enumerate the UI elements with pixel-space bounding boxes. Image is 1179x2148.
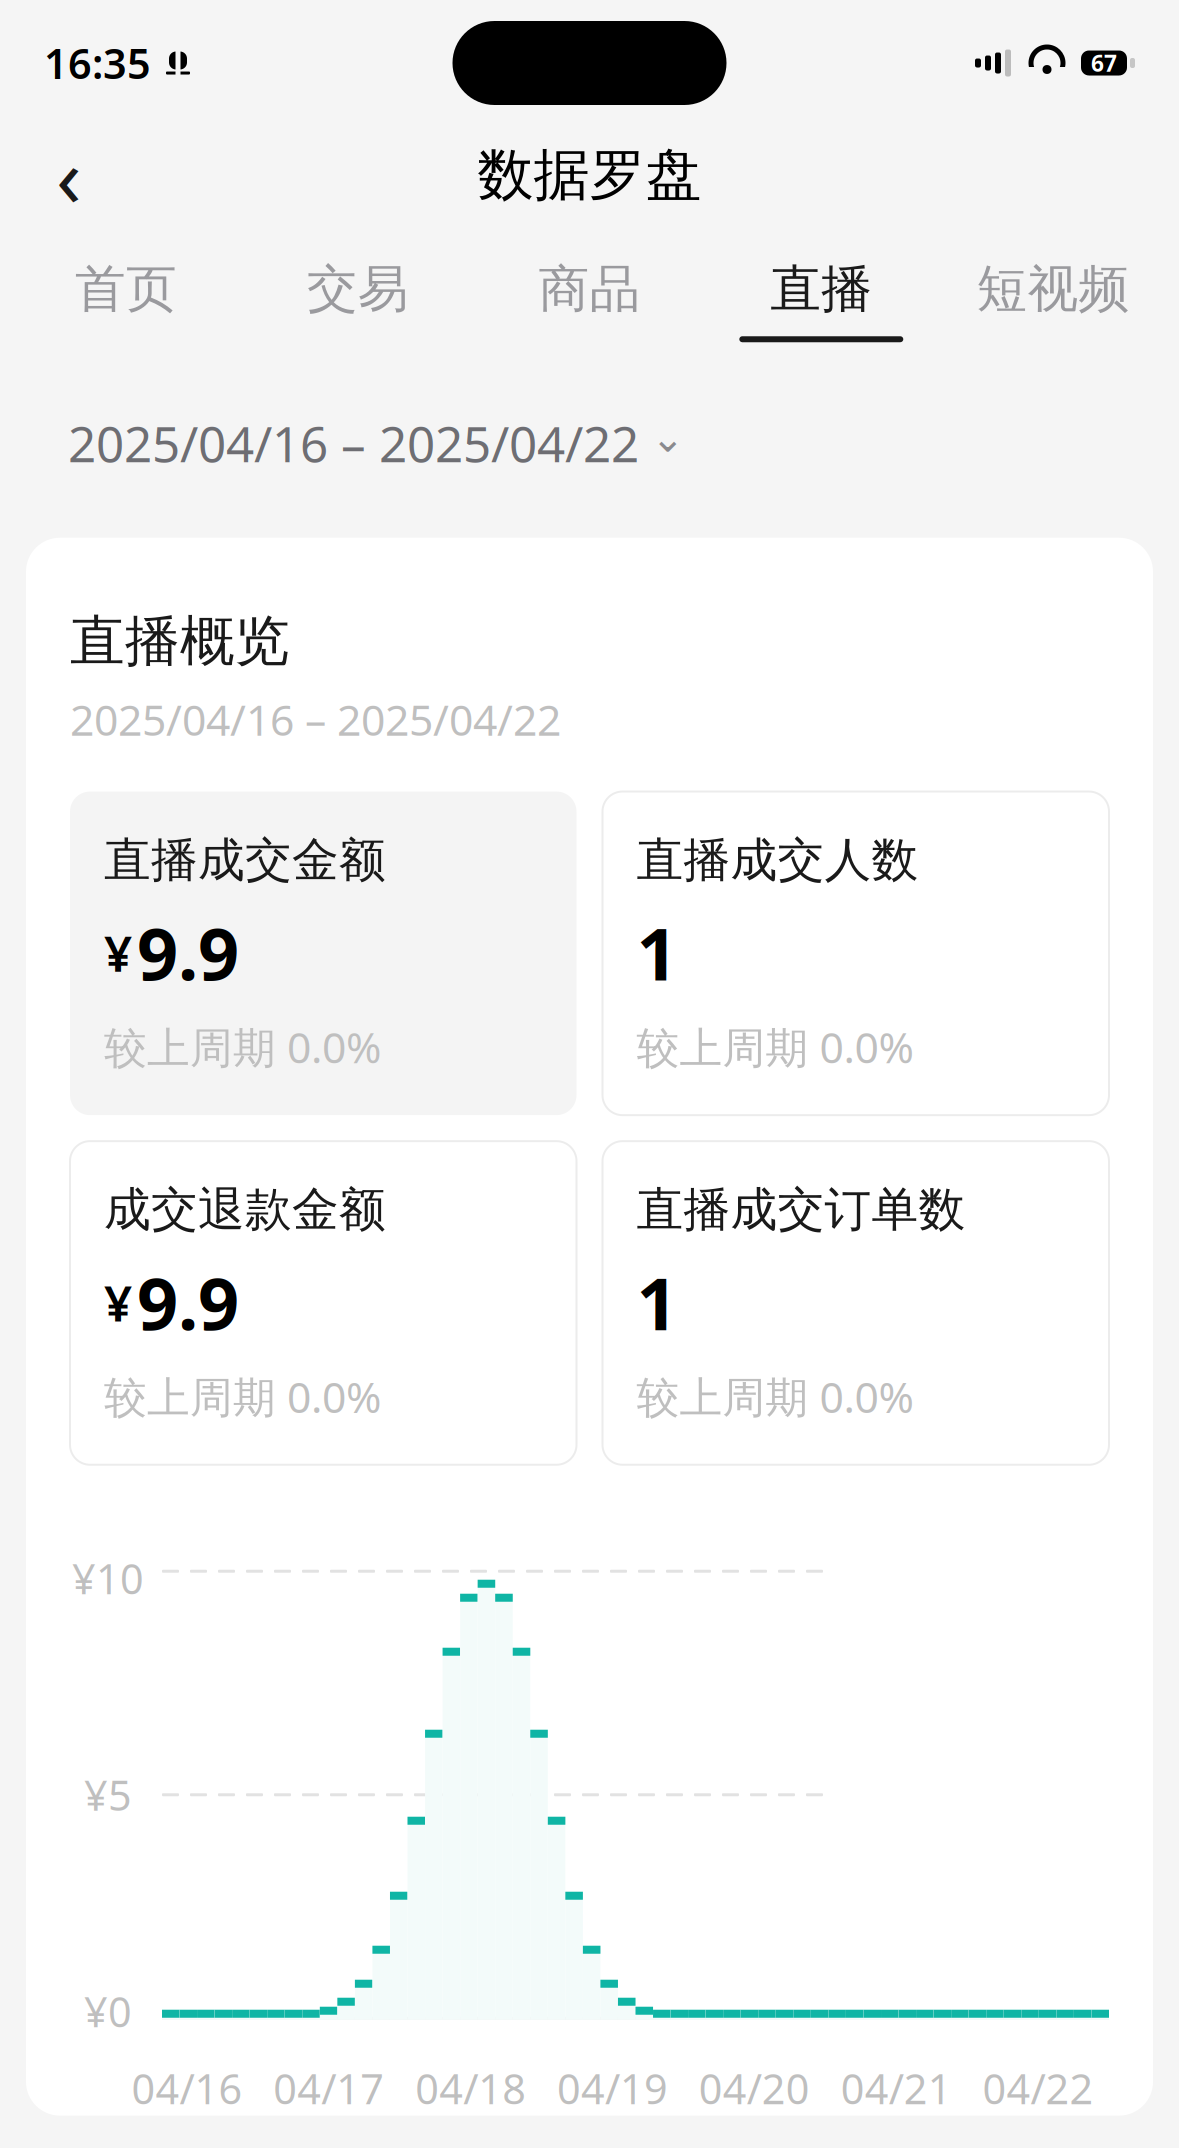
- staticText: 1: [636, 1254, 677, 1350]
- staticText: 直播概览: [70, 608, 290, 675]
- button[interactable]: 交易: [242, 250, 474, 350]
- staticText: 67: [1091, 48, 1117, 78]
- staticText: 直播: [770, 258, 872, 320]
- staticText: 04/22: [983, 2061, 1094, 2116]
- staticText: 直播成交金额: [104, 832, 386, 889]
- staticText: 成交退款金额: [104, 1181, 386, 1238]
- staticText: ¥5: [84, 1767, 132, 1822]
- staticText: 较上周期 0.0%: [104, 1018, 381, 1075]
- staticText: 数据罗盘: [477, 141, 701, 209]
- staticText: 04/20: [699, 2061, 810, 2116]
- staticText: 直播成交人数: [636, 832, 918, 889]
- button[interactable]: 成交退款金额: [70, 1141, 576, 1465]
- staticText: 商品: [538, 258, 640, 320]
- staticText: 交易: [307, 258, 409, 320]
- staticText: 较上周期 0.0%: [636, 1018, 913, 1075]
- staticText: 04/17: [273, 2061, 384, 2116]
- staticText: 9.9: [137, 1254, 239, 1350]
- staticText: ¥10: [72, 1551, 144, 1606]
- button[interactable]: 2025/04/16 – 2025/04/22: [68, 400, 685, 486]
- staticText: 较上周期 0.0%: [636, 1368, 913, 1425]
- button[interactable]: 商品: [474, 250, 705, 350]
- staticText: 首页: [75, 258, 177, 320]
- staticText: 较上周期 0.0%: [104, 1368, 381, 1425]
- staticText: 04/21: [841, 2061, 952, 2116]
- button[interactable]: 直播成交人数: [602, 792, 1109, 1115]
- staticText: 16:35: [44, 36, 151, 90]
- button[interactable]: 返回: [30, 136, 108, 214]
- staticText: ⌄: [651, 415, 685, 461]
- staticText: 2025/04/16 – 2025/04/22: [68, 410, 639, 476]
- staticText: 04/19: [557, 2061, 668, 2116]
- staticText: 04/16: [131, 2061, 242, 2116]
- staticText: 1: [636, 905, 677, 1000]
- button[interactable]: 直播成交金额: [70, 792, 576, 1115]
- staticText: ¥: [104, 1269, 132, 1335]
- staticText: ¥: [104, 920, 132, 985]
- button[interactable]: 直播: [705, 250, 937, 350]
- staticText: ¥0: [84, 1984, 132, 2039]
- button[interactable]: 短视频: [937, 250, 1169, 350]
- staticText: 2025/04/16 – 2025/04/22: [70, 691, 561, 748]
- staticText: 直播成交订单数: [636, 1181, 965, 1238]
- button[interactable]: 首页: [10, 250, 242, 350]
- staticText: 9.9: [137, 905, 239, 1000]
- button[interactable]: 直播成交订单数: [602, 1141, 1109, 1465]
- staticText: ‹: [56, 120, 82, 230]
- staticText: 短视频: [977, 258, 1130, 320]
- staticText: 04/18: [415, 2061, 526, 2116]
